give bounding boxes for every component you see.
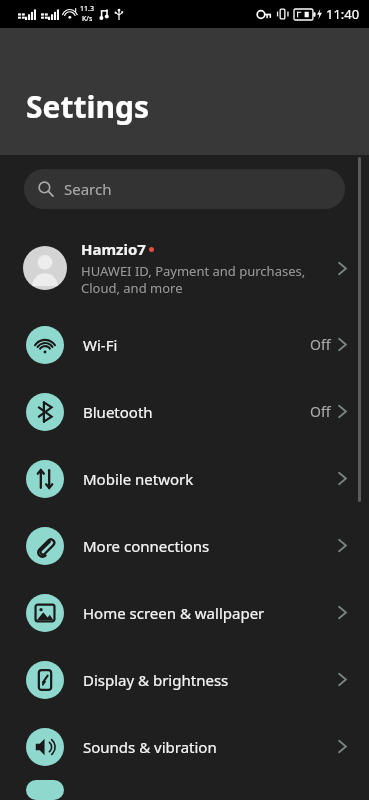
staticText: Bluetooth [83, 402, 310, 422]
button[interactable]: Home screen & wallpaper [0, 579, 369, 646]
staticText: Display & brightness [83, 670, 338, 690]
staticText: Sounds & vibration [83, 737, 338, 757]
staticText: Mobile network [83, 469, 338, 489]
button[interactable]: Display & brightness [0, 646, 369, 713]
staticText: Hamzio7 [81, 239, 146, 259]
button[interactable]: Search [24, 169, 345, 209]
staticText: Home screen & wallpaper [83, 603, 338, 623]
other: Battery [26, 780, 64, 800]
staticText: Off [310, 335, 331, 354]
button[interactable]: Mobile network [0, 445, 369, 512]
staticText: Settings [26, 86, 149, 127]
button[interactable]: Hamzio7 [0, 225, 369, 311]
button[interactable]: Battery [0, 780, 369, 800]
staticText: Wi-Fi [83, 335, 310, 355]
staticText: Search [64, 179, 112, 199]
button[interactable]: Sounds & vibration [0, 713, 369, 780]
staticText: 11.3 [80, 4, 94, 14]
staticText: K/s [82, 14, 93, 24]
staticText: HUAWEI ID, Payment and purchases, Cloud,… [81, 262, 306, 297]
button[interactable]: Bluetooth [0, 378, 369, 445]
button[interactable]: Wi-Fi [0, 311, 369, 378]
staticText: More connections [83, 536, 338, 556]
staticText: Off [310, 402, 331, 421]
button[interactable]: More connections [0, 512, 369, 579]
staticText: 11:40 [326, 5, 360, 23]
